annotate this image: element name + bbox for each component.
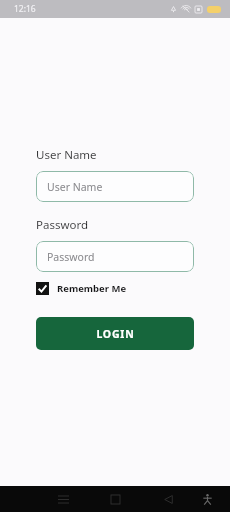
staticText: 12:16 xyxy=(14,3,36,15)
button[interactable]: Menu xyxy=(46,486,80,512)
button[interactable]: User Name xyxy=(36,171,194,202)
staticText: Remember Me xyxy=(57,282,127,295)
staticText: Password xyxy=(36,217,89,233)
button[interactable]: Remember Me xyxy=(36,279,127,298)
button[interactable]: LOGIN xyxy=(36,317,194,350)
button[interactable]: Password xyxy=(36,241,194,272)
staticText: Password xyxy=(47,250,95,264)
staticText: User Name xyxy=(47,180,103,194)
button[interactable]: Back xyxy=(151,486,185,512)
button[interactable]: Accessibility xyxy=(190,486,224,512)
staticText: User Name xyxy=(36,147,97,163)
button[interactable]: Home xyxy=(98,486,132,512)
staticText: LOGIN xyxy=(96,327,135,341)
